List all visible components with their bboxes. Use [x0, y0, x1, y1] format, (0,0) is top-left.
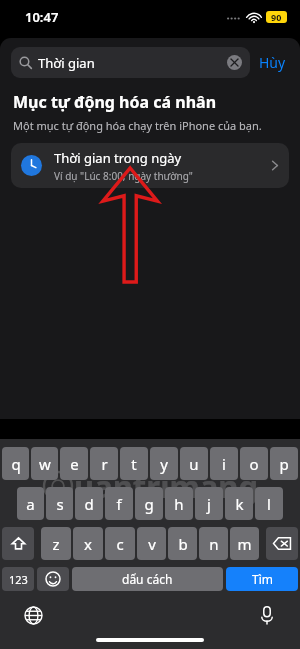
button[interactable]: Change keyboard language — [20, 602, 46, 628]
staticText: dấu cách — [122, 571, 173, 587]
button[interactable]: v — [137, 527, 166, 560]
button[interactable]: d — [75, 487, 103, 520]
staticText: Một mục tự động hóa chạy trên iPhone của… — [13, 118, 262, 133]
button[interactable]: l — [255, 487, 283, 520]
staticText: 123 — [9, 572, 28, 587]
button[interactable]: s — [46, 487, 73, 520]
button[interactable]: m — [230, 527, 259, 560]
button[interactable]: Backspace — [266, 527, 298, 560]
staticText: q — [11, 454, 21, 474]
staticText: z — [52, 534, 60, 554]
button[interactable]: z — [41, 527, 71, 560]
staticText: j — [207, 494, 211, 514]
staticText: uantrimang — [74, 465, 258, 507]
button[interactable]: g — [135, 487, 163, 520]
button[interactable]: c — [105, 527, 135, 560]
staticText: h — [174, 494, 184, 514]
button[interactable]: Hùy — [250, 48, 289, 77]
staticText: i — [222, 454, 226, 474]
button[interactable]: Tìm — [226, 567, 298, 591]
button[interactable]: q — [2, 447, 29, 480]
button[interactable]: o — [240, 447, 268, 480]
staticText: p — [279, 454, 289, 474]
button[interactable]: p — [270, 447, 298, 480]
button[interactable]: Shift — [2, 527, 34, 560]
button[interactable]: dấu cách — [72, 567, 223, 591]
staticText: b — [178, 534, 188, 554]
staticText: Tìm — [252, 571, 273, 587]
button[interactable]: Thời gian trong ngày — [11, 143, 289, 188]
staticText: 10:47 — [25, 8, 59, 26]
staticText: s — [56, 494, 64, 514]
staticText: Mục tự động hóa cá nhân — [13, 91, 217, 113]
button[interactable]: n — [199, 527, 228, 560]
button[interactable]: j — [195, 487, 223, 520]
button[interactable]: u — [180, 447, 208, 480]
button[interactable]: 123 — [2, 567, 34, 591]
button[interactable]: x — [73, 527, 103, 560]
staticText: u — [189, 454, 199, 474]
staticText: w — [39, 454, 51, 474]
staticText: Thời gian trong ngày — [54, 149, 182, 167]
staticText: r — [101, 454, 108, 474]
staticText: x — [84, 534, 92, 554]
button[interactable]: a — [17, 487, 44, 520]
staticText: f — [116, 494, 122, 514]
staticText: Hùy — [259, 53, 286, 72]
staticText: o — [249, 454, 259, 474]
staticText: v — [148, 534, 156, 554]
staticText: d — [84, 494, 94, 514]
button[interactable]: h — [165, 487, 193, 520]
button[interactable]: i — [210, 447, 238, 480]
staticText: t — [131, 454, 137, 474]
button[interactable]: Dictation — [254, 602, 280, 628]
staticText: g — [144, 494, 154, 514]
staticText: y — [160, 454, 168, 474]
staticText: c — [116, 534, 124, 554]
staticText: m — [237, 534, 252, 554]
staticText: Thời gian — [38, 54, 95, 72]
staticText: l — [267, 494, 271, 514]
staticText: Ví dụ "Lúc 8:00, ngày thường" — [54, 169, 193, 183]
staticText: e — [70, 454, 79, 474]
button[interactable]: f — [105, 487, 133, 520]
button[interactable]: t — [120, 447, 148, 480]
button[interactable]: k — [225, 487, 253, 520]
button[interactable]: w — [31, 447, 58, 480]
button[interactable]: Thời gian — [11, 47, 250, 78]
button[interactable]: y — [150, 447, 178, 480]
staticText: k — [235, 494, 244, 514]
button[interactable]: Clear text — [227, 55, 242, 70]
staticText: 90 — [271, 11, 282, 23]
button[interactable]: e — [60, 447, 88, 480]
staticText: a — [26, 494, 35, 514]
staticText: n — [209, 534, 219, 554]
button[interactable]: b — [168, 527, 197, 560]
button[interactable]: r — [90, 447, 118, 480]
button[interactable]: Emoji — [37, 567, 69, 591]
